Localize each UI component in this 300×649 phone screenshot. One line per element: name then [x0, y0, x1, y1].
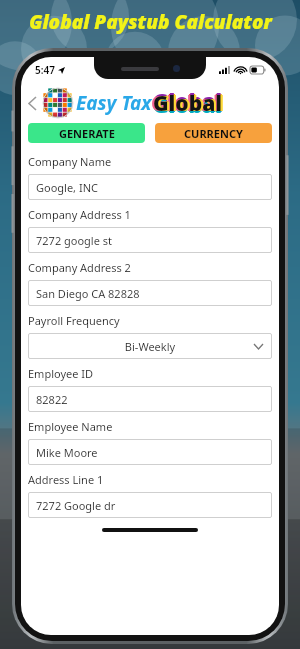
staticText: Employee ID: [28, 366, 94, 381]
staticText: GENERATE: [59, 126, 115, 141]
staticText: 7272 Google dr: [36, 498, 116, 513]
staticText: Bi-Weekly: [28, 339, 272, 354]
staticText: Global: [153, 91, 223, 120]
staticText: Payroll Frequency: [28, 313, 120, 328]
button[interactable]: Back: [21, 87, 43, 119]
button[interactable]: Bi-Weekly: [28, 333, 272, 359]
staticText: Global: [153, 89, 223, 118]
staticText: San Diego CA 82828: [36, 286, 140, 301]
button[interactable]: Mike Moore: [28, 439, 272, 465]
button[interactable]: CURRENCY: [155, 123, 272, 143]
button[interactable]: Google, INC: [28, 174, 272, 200]
staticText: Global: [154, 90, 224, 119]
staticText: Global: [152, 88, 222, 117]
button[interactable]: GENERATE: [28, 123, 145, 143]
staticText: Global: [151, 89, 221, 118]
staticText: Mike Moore: [36, 445, 98, 460]
staticText: CURRENCY: [184, 126, 243, 141]
staticText: Easy Tax: [76, 90, 152, 116]
staticText: 5:47: [35, 63, 55, 77]
staticText: Company Address 1: [28, 207, 131, 222]
staticText: Address Line 1: [28, 472, 104, 487]
staticText: Google, INC: [36, 180, 98, 195]
staticText: Employee Name: [28, 419, 113, 434]
staticText: 82822: [36, 392, 68, 407]
button[interactable]: 7272 google st: [28, 227, 272, 253]
staticText: Global: [155, 89, 225, 118]
button[interactable]: San Diego CA 82828: [28, 280, 272, 306]
staticText: 7272 google st: [36, 233, 113, 248]
staticText: Company Address 2: [28, 260, 131, 275]
staticText: Global: [152, 90, 222, 119]
button[interactable]: 82822: [28, 386, 272, 412]
staticText: Global: [154, 88, 224, 117]
button[interactable]: 7272 Google dr: [28, 492, 272, 518]
staticText: Global Paystub Calculator: [29, 9, 272, 35]
staticText: Company Name: [28, 154, 112, 169]
staticText: Global: [153, 87, 223, 116]
